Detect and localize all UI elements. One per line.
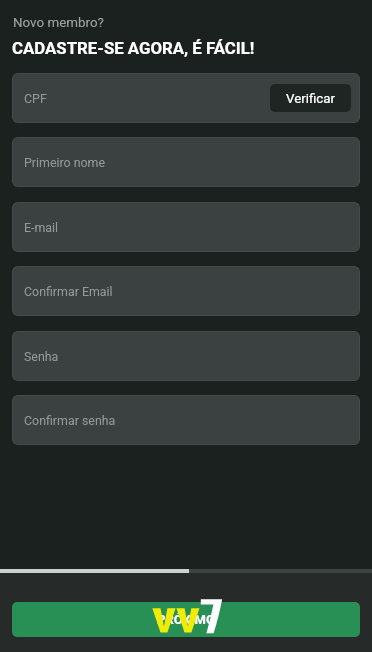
staticText: PRÓXIMO (157, 612, 215, 627)
button[interactable]: Verificar (270, 84, 351, 112)
staticText: CADASTRE-SE AGORA, É FÁCIL! (12, 38, 255, 58)
staticText: Primeiro nome (24, 155, 106, 170)
button[interactable]: Senha (12, 331, 360, 381)
staticText: Senha (24, 349, 59, 364)
button[interactable]: PRÓXIMO (12, 602, 360, 637)
staticText: Verificar (286, 91, 336, 107)
staticText: Confirmar Email (24, 284, 113, 299)
staticText: CPF (24, 91, 47, 106)
staticText: E-mail (24, 220, 59, 235)
staticText: Novo membro? (13, 15, 104, 31)
button[interactable]: Confirmar Email (12, 266, 360, 316)
button[interactable]: CPF (12, 73, 360, 123)
button[interactable]: Confirmar senha (12, 395, 360, 445)
staticText: Confirmar senha (24, 413, 116, 428)
button[interactable]: Primeiro nome (12, 137, 360, 187)
button[interactable]: E-mail (12, 202, 360, 252)
